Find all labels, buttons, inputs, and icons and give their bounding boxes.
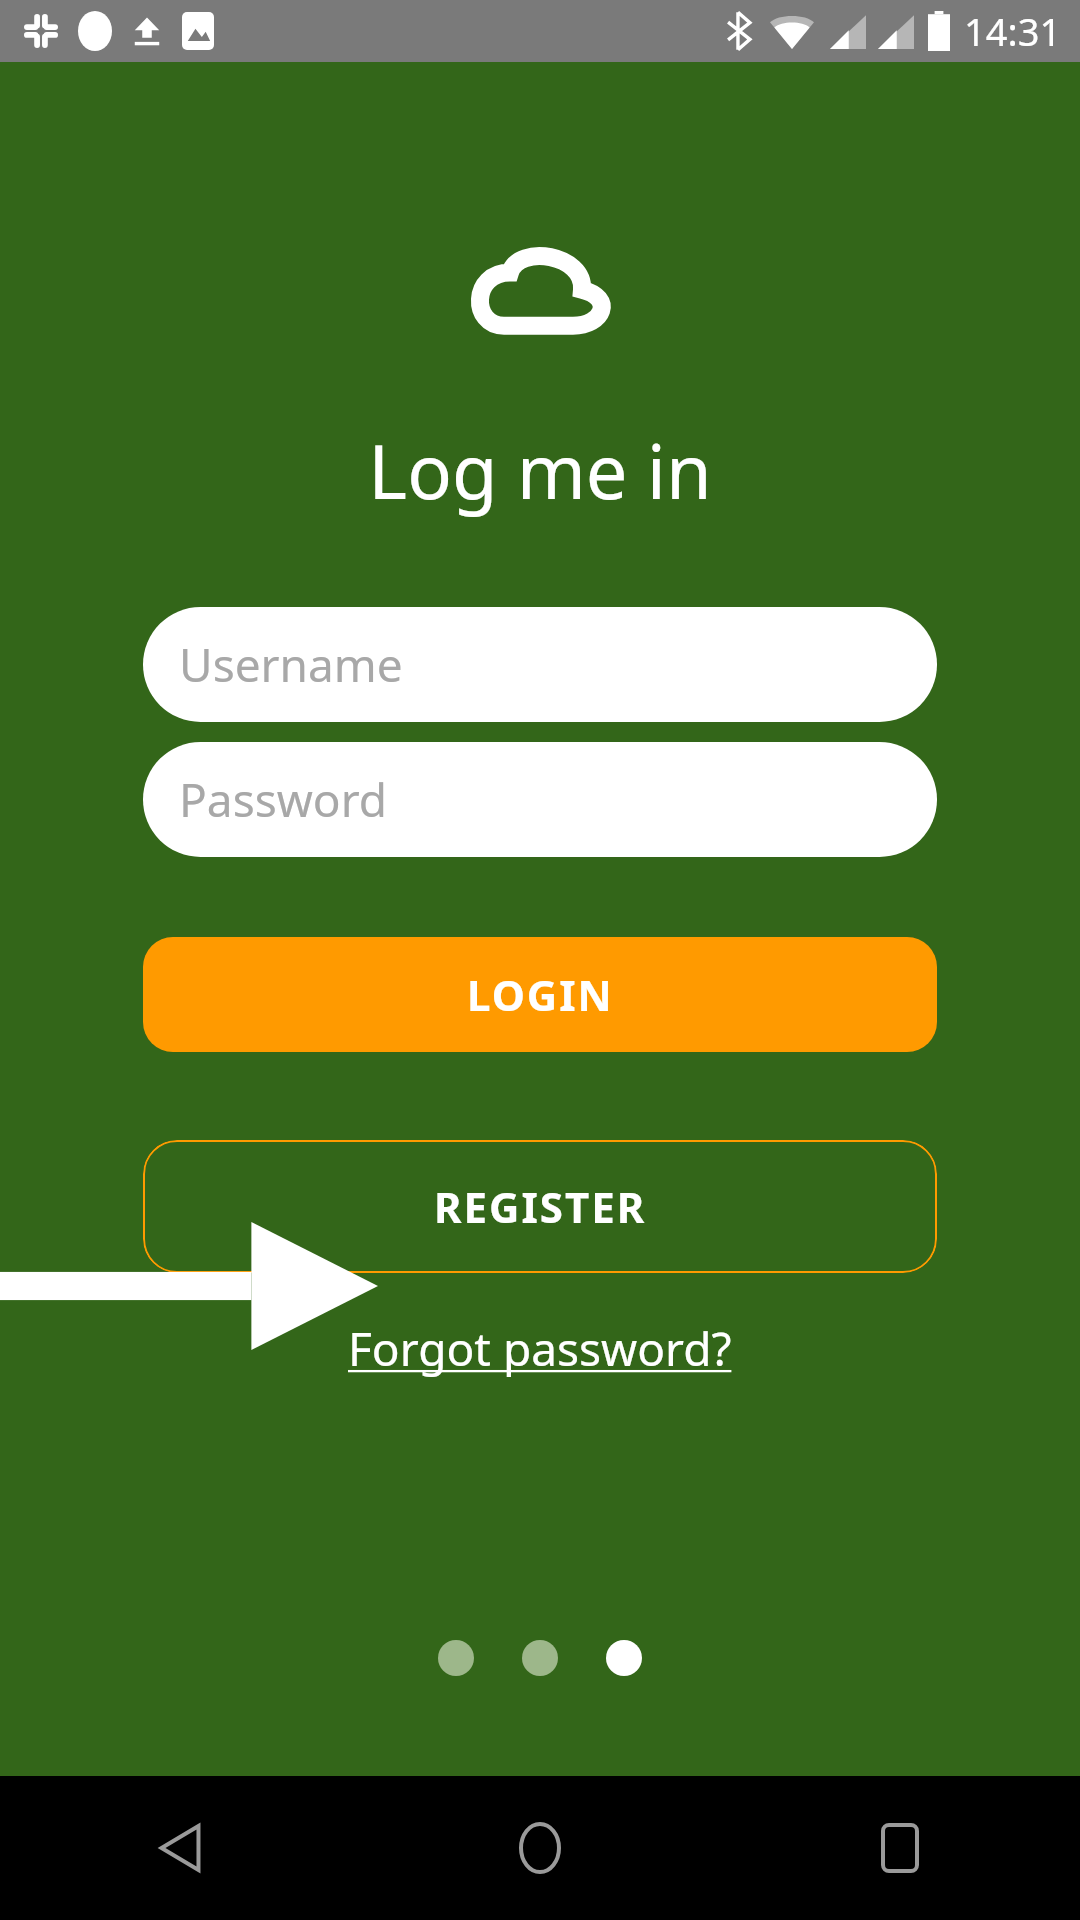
staticText: Username — [179, 633, 403, 696]
button[interactable]: Back — [0, 1776, 360, 1920]
button[interactable]: Home — [360, 1776, 720, 1920]
staticText: LOGIN — [467, 966, 614, 1023]
staticText: Password — [179, 768, 388, 831]
staticText: Forgot password? — [348, 1317, 732, 1380]
staticText: 14:31 — [964, 5, 1062, 57]
staticText: Log me in — [0, 420, 1080, 521]
button[interactable]: Recents — [720, 1776, 1080, 1920]
staticText: REGISTER — [434, 1178, 647, 1235]
button[interactable]: LOGIN — [143, 937, 937, 1052]
button[interactable]: REGISTER — [143, 1140, 937, 1273]
button[interactable]: Page indicator — [522, 1640, 558, 1676]
button[interactable]: Page indicator — [606, 1640, 642, 1676]
button[interactable]: Password — [143, 742, 937, 857]
button[interactable]: Page indicator — [438, 1640, 474, 1676]
button[interactable]: Forgot password? — [336, 1311, 744, 1386]
button[interactable]: Username — [143, 607, 937, 722]
